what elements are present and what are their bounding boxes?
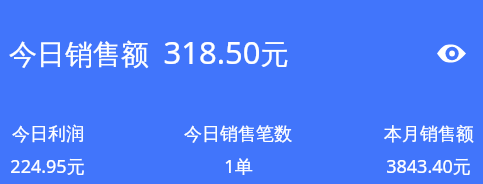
staticText: 今日销售额 318.50元 <box>9 31 289 73</box>
button[interactable]: 今日销售笔数 <box>161 120 322 179</box>
staticText: 本月销售额 <box>384 123 474 146</box>
staticText: 今日销售笔数 <box>184 123 292 146</box>
button[interactable]: 本月销售额 <box>322 120 483 179</box>
button[interactable]: Hide sales amount <box>433 39 469 67</box>
staticText: 1单 <box>224 154 253 179</box>
staticText: 今日利润 <box>12 123 84 146</box>
staticText: 224.95元 <box>10 154 85 179</box>
button[interactable]: 今日利润 <box>0 120 161 179</box>
staticText: 3843.40元 <box>386 154 471 179</box>
